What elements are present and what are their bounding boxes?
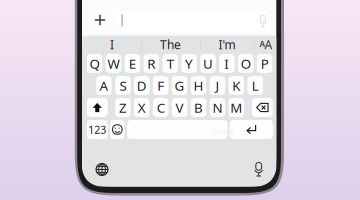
staticText: U (203, 55, 213, 72)
button[interactable]: H (191, 76, 206, 95)
staticText: Q (89, 55, 99, 72)
staticText: W (107, 55, 119, 72)
button[interactable]: G (172, 76, 187, 95)
staticText: L (252, 77, 259, 94)
button[interactable]: J (210, 76, 225, 95)
button[interactable]: Message field (115, 10, 272, 32)
button[interactable]: D (134, 76, 150, 95)
staticText: A (260, 38, 266, 49)
button[interactable]: T (162, 54, 178, 73)
staticText: I'm (218, 37, 235, 52)
button[interactable]: W (106, 54, 121, 73)
staticText: The (160, 37, 181, 52)
button[interactable]: Add (87, 7, 113, 33)
button[interactable]: U (200, 54, 216, 73)
staticText: M (230, 99, 242, 116)
button[interactable]: V (172, 98, 187, 117)
button[interactable]: S (115, 76, 131, 95)
staticText: O (241, 55, 251, 72)
button[interactable]: Emoji (110, 120, 125, 139)
staticText: space (210, 125, 234, 137)
button[interactable]: Delete (252, 98, 273, 117)
staticText: F (157, 77, 164, 94)
button[interactable]: Shift (87, 98, 108, 117)
button[interactable]: Return (229, 120, 273, 139)
staticText: A (264, 37, 272, 52)
staticText: R (147, 55, 155, 72)
staticText: V (176, 99, 184, 116)
staticText: K (232, 77, 240, 94)
staticText: G (175, 77, 185, 94)
button[interactable]: Switch keyboard (91, 158, 113, 180)
button[interactable]: N (210, 98, 225, 117)
staticText: B (194, 99, 203, 116)
button[interactable]: L (247, 76, 263, 95)
staticText: C (157, 99, 165, 116)
button[interactable]: O (238, 54, 253, 73)
button[interactable]: R (143, 54, 159, 73)
staticText: N (212, 99, 222, 116)
staticText: J (215, 77, 219, 94)
staticText: S (119, 77, 126, 94)
staticText: X (138, 99, 146, 116)
button[interactable]: The (141, 36, 199, 53)
button[interactable]: I (84, 36, 141, 53)
button[interactable]: M (228, 98, 244, 117)
button[interactable]: I (219, 54, 235, 73)
button[interactable]: K (228, 76, 244, 95)
staticText: P (261, 55, 269, 72)
staticText: Y (185, 55, 193, 72)
button[interactable]: A (96, 76, 112, 95)
button[interactable]: X (134, 98, 149, 117)
button[interactable]: Y (181, 54, 197, 73)
button[interactable]: 123 (87, 120, 108, 139)
staticText: 123 (88, 122, 106, 137)
button[interactable]: Q (87, 54, 102, 73)
button[interactable]: P (257, 54, 272, 73)
staticText: I (224, 55, 229, 72)
button[interactable]: Dictation (248, 158, 270, 180)
button[interactable]: E (125, 54, 140, 73)
staticText: A (99, 77, 108, 94)
button[interactable]: Z (115, 98, 131, 117)
staticText: I (110, 37, 114, 52)
button[interactable]: B (191, 98, 206, 117)
button[interactable]: F (153, 76, 168, 95)
button[interactable]: C (153, 98, 168, 117)
button[interactable]: Text formatting (255, 36, 276, 53)
staticText: E (129, 55, 136, 72)
button[interactable]: I'm (200, 36, 253, 53)
staticText: Z (119, 99, 127, 116)
staticText: H (193, 77, 203, 94)
staticText: T (167, 55, 174, 72)
staticText: D (137, 77, 147, 94)
